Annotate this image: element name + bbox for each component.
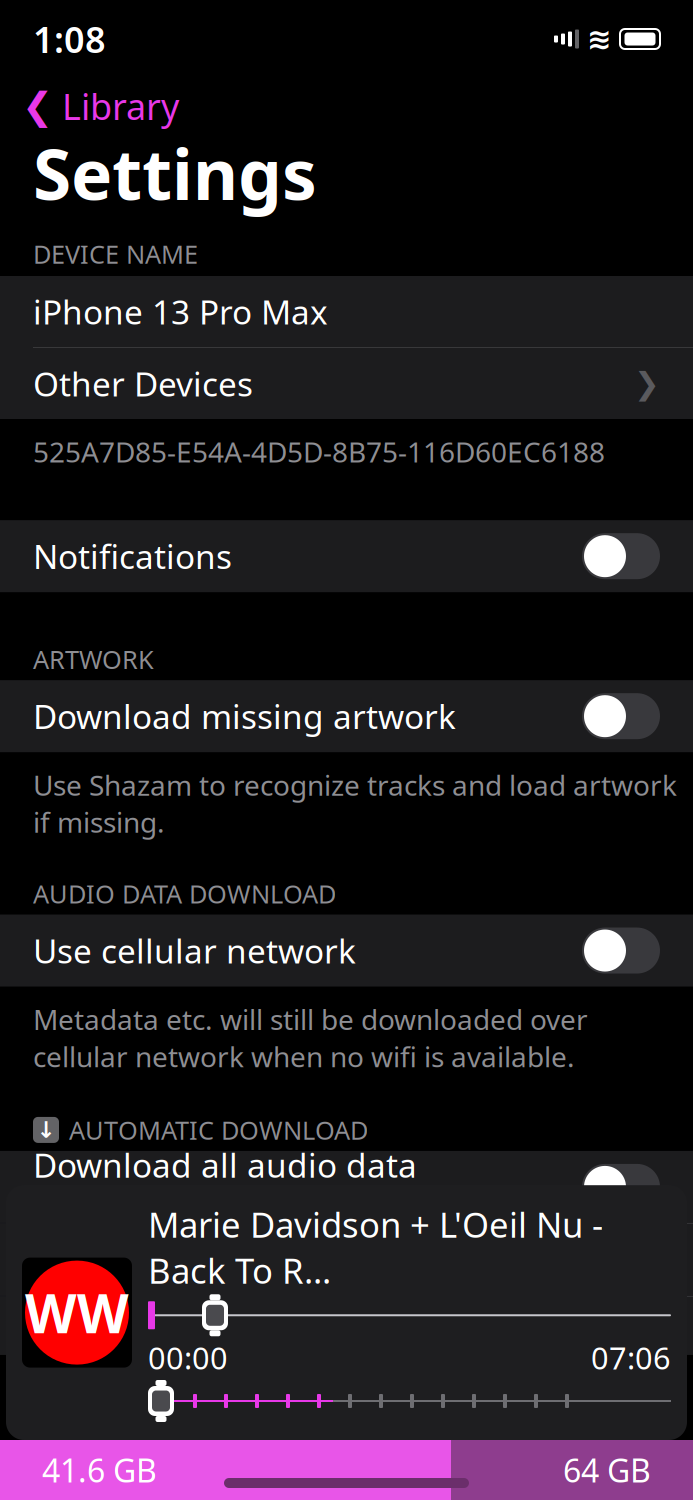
staticText: Use Shazam to recognize tracks and load … [33,766,677,841]
staticText: AUTOMATIC DOWNLOAD [69,1113,368,1147]
staticText: Download missing artwork [33,694,456,738]
staticText: iPhone 13 Pro Max [33,289,328,334]
button[interactable]: Download missing artwork [0,680,693,752]
staticText: ↓ [36,1117,55,1143]
staticText: 41.6 GB [42,1449,157,1491]
staticText: Metadata etc. will still be downloaded o… [33,1000,588,1075]
staticText: 07:06 [591,1337,671,1378]
button[interactable]: Notifications [0,520,693,592]
staticText: 0 % [33,1304,89,1348]
staticText: ❮ [22,85,53,127]
staticText: Delete other downloaded audio data [33,1216,534,1304]
button[interactable]: Use cellular network [0,914,693,986]
button[interactable]: Other Devices [0,348,693,419]
staticText: 525A7D85-E54A-4D5D-8B75-116D60EC6188 [33,433,605,470]
staticText: 1:08 [33,15,106,63]
staticText: Download all audio data automatically [33,1143,417,1231]
staticText: Settings [33,127,317,219]
button[interactable]: ❮ [0,78,693,134]
staticText: 00:00 [148,1337,228,1378]
staticText: Notifications [33,534,232,578]
staticText: Use cellular network [33,928,356,973]
button[interactable]: Download all audio data automatically [0,1151,693,1223]
staticText: ≋ [587,22,612,56]
staticText: Marie Davidson + L'Oeil Nu - Back To R..… [148,1201,603,1293]
staticText: 100 % [566,1304,660,1348]
staticText: 64 GB [563,1449,651,1491]
button[interactable]: Delete other downloaded audio data [0,1224,693,1296]
staticText: Other Devices [33,361,253,406]
staticText: ❯ [634,366,660,401]
staticText: WW [25,1277,129,1348]
staticText: Library [62,82,179,130]
staticText: ARTWORK [33,642,154,676]
staticText: DEVICE NAME [33,237,198,271]
staticText: AUDIO DATA DOWNLOAD [33,877,336,910]
